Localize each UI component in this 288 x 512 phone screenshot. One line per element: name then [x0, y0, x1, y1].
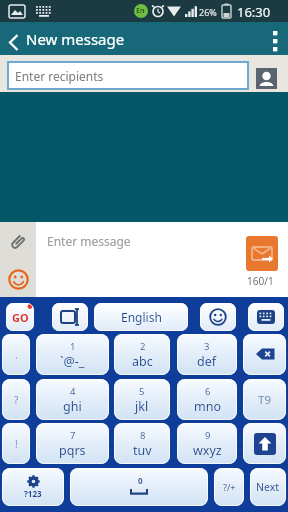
staticText: abc: [132, 353, 153, 370]
staticText: 3: [204, 340, 210, 353]
staticText: 7: [70, 429, 76, 442]
staticText: T9: [258, 392, 271, 408]
staticText: 8: [140, 429, 146, 442]
button[interactable]: 3: [177, 334, 237, 375]
button[interactable]: 9: [177, 423, 237, 464]
button[interactable]: 0: [70, 468, 208, 506]
button[interactable]: ?/+: [214, 468, 244, 506]
staticText: tuv: [133, 442, 152, 459]
staticText: 5: [139, 385, 145, 398]
staticText: 160/1: [247, 274, 274, 288]
button[interactable]: [0, 222, 36, 262]
button[interactable]: [52, 303, 88, 331]
button[interactable]: 1: [36, 334, 109, 375]
button[interactable]: [0, 262, 36, 296]
button[interactable]: English: [94, 303, 188, 331]
button[interactable]: ?: [2, 379, 30, 420]
staticText: Next: [256, 480, 280, 494]
staticText: 16:30: [237, 3, 271, 21]
staticText: 4: [70, 385, 76, 398]
button[interactable]: !: [2, 423, 30, 464]
button[interactable]: [248, 303, 284, 331]
staticText: ?123: [24, 488, 42, 499]
button[interactable]: .: [2, 334, 30, 375]
button[interactable]: Enter message: [47, 233, 131, 249]
button[interactable]: New message: [0, 22, 125, 55]
button[interactable]: Enter recipients: [8, 62, 248, 89]
staticText: 0: [138, 475, 143, 486]
button[interactable]: T9: [243, 379, 286, 420]
button[interactable]: 8: [114, 423, 170, 464]
button[interactable]: 5: [114, 379, 170, 420]
button[interactable]: [246, 236, 278, 271]
staticText: GO: [12, 310, 29, 325]
staticText: English: [121, 309, 162, 325]
staticText: !: [15, 437, 18, 451]
staticText: En: [136, 6, 145, 16]
button[interactable]: Next: [250, 468, 286, 506]
staticText: 1: [70, 340, 76, 353]
button[interactable]: 4: [36, 379, 109, 420]
staticText: pqrs: [59, 442, 86, 459]
staticText: wxyz: [193, 442, 222, 459]
button[interactable]: [256, 68, 277, 89]
staticText: 2: [140, 340, 146, 353]
staticText: mno: [194, 398, 221, 415]
staticText: ghi: [63, 398, 82, 415]
staticText: New message: [26, 29, 125, 49]
staticText: ?/+: [223, 481, 236, 493]
button[interactable]: ?123: [2, 468, 64, 506]
staticText: 6: [205, 385, 211, 398]
staticText: .: [15, 348, 18, 362]
button[interactable]: [243, 423, 286, 464]
button[interactable]: 2: [114, 334, 170, 375]
button[interactable]: 6: [177, 379, 237, 420]
button[interactable]: [258, 22, 288, 55]
staticText: Enter recipients: [15, 68, 104, 84]
staticText: jkl: [135, 398, 149, 415]
button[interactable]: [200, 303, 236, 331]
staticText: def: [197, 353, 217, 370]
staticText: 9: [205, 429, 211, 442]
staticText: `@-_: [60, 353, 85, 370]
staticText: ?: [14, 393, 19, 407]
staticText: 26%: [199, 6, 217, 18]
button[interactable]: [243, 334, 286, 375]
button[interactable]: 7: [36, 423, 109, 464]
button[interactable]: GO: [6, 303, 34, 331]
